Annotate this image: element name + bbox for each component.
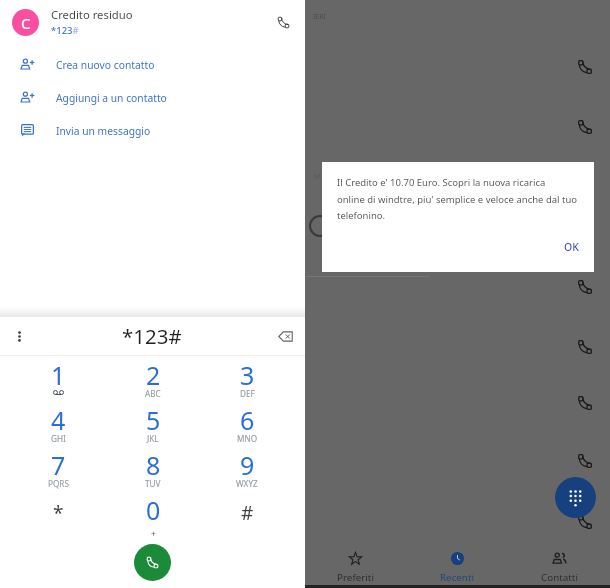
button[interactable]: 8	[106, 447, 200, 492]
staticText: Recenti	[440, 571, 474, 584]
button[interactable]: 0	[106, 492, 200, 537]
staticText: DEF	[240, 388, 255, 399]
button[interactable]: Invia un messaggio	[0, 121, 305, 140]
staticText: Il Credito e' 10.70 Euro. Scopri la nuov…	[337, 176, 592, 222]
staticText: Crea nuovo contatto	[56, 58, 155, 72]
staticText: 1	[51, 358, 66, 392]
staticText: WXYZ	[236, 478, 258, 489]
staticText: Credito residuo	[51, 7, 133, 22]
staticText: Preferiti	[337, 571, 374, 584]
button[interactable]: C	[0, 3, 305, 41]
button[interactable]: 2	[106, 357, 200, 402]
staticText: +	[151, 528, 156, 539]
button[interactable]: Call back	[574, 336, 596, 358]
staticText: TUV	[145, 478, 161, 489]
staticText: *123#	[51, 24, 79, 37]
staticText: 6	[240, 403, 255, 437]
staticText: 7	[51, 448, 66, 482]
button[interactable]: Preferiti	[305, 544, 406, 588]
button[interactable]: 9	[200, 447, 294, 492]
staticText: *	[53, 500, 64, 526]
staticText: 8	[146, 448, 161, 482]
button[interactable]: Call back	[574, 276, 596, 298]
button[interactable]: Call back	[574, 511, 596, 533]
button[interactable]: Call back	[574, 392, 596, 414]
staticText: MNO	[237, 433, 258, 444]
staticText: Aggiungi a un contatto	[56, 91, 167, 105]
button[interactable]: Call	[134, 544, 171, 581]
staticText: GHI	[51, 433, 66, 444]
button[interactable]: Aggiungi a un contatto	[0, 88, 305, 107]
staticText: JKL	[147, 433, 159, 444]
button[interactable]: 4	[11, 402, 106, 447]
button[interactable]: Backspace	[266, 317, 304, 355]
button[interactable]: 1	[11, 357, 106, 402]
button[interactable]: 5	[106, 402, 200, 447]
button[interactable]: Recenti	[406, 544, 508, 588]
button[interactable]: Contatti	[508, 544, 610, 588]
staticText: 2	[146, 358, 161, 392]
button[interactable]: #	[200, 492, 294, 537]
staticText: IERI	[313, 12, 326, 22]
staticText: 9	[240, 448, 255, 482]
staticText: ABC	[145, 388, 161, 399]
staticText: 0	[146, 493, 161, 527]
button[interactable]: More options	[0, 317, 38, 355]
button[interactable]: *	[11, 492, 106, 537]
button[interactable]: Crea nuovo contatto	[0, 55, 305, 74]
button[interactable]: 3	[200, 357, 294, 402]
button[interactable]: Call	[268, 7, 298, 37]
staticText: PQRS	[48, 478, 69, 489]
button[interactable]: Dialpad	[555, 477, 596, 518]
staticText: Contatti	[541, 571, 578, 584]
staticText: #	[241, 500, 254, 526]
staticText: *123#	[122, 322, 182, 350]
button[interactable]: Call back	[574, 116, 596, 138]
staticText: 3	[240, 358, 255, 392]
staticText: Invia un messaggio	[56, 124, 151, 138]
button[interactable]: 6	[200, 402, 294, 447]
staticText: 5	[146, 403, 161, 437]
staticText: C	[21, 13, 31, 33]
button[interactable]: OK	[556, 233, 587, 261]
staticText: OK	[564, 240, 579, 254]
staticText: M	[314, 172, 321, 182]
staticText: 4	[51, 403, 66, 437]
button[interactable]: Call back	[574, 450, 596, 472]
button[interactable]: 7	[11, 447, 106, 492]
button[interactable]: Call back	[574, 56, 596, 78]
